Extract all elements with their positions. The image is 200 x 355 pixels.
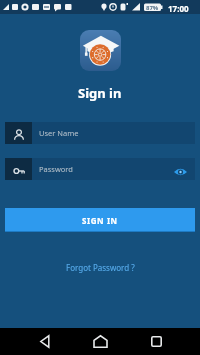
button[interactable] xyxy=(25,328,65,355)
staticText: User Name xyxy=(39,128,79,138)
button[interactable]: User Name xyxy=(5,122,195,144)
staticText: Sign in xyxy=(78,84,122,102)
staticText: 17:00 xyxy=(168,3,189,14)
button[interactable]: SIGN IN xyxy=(5,208,195,232)
staticText: Password xyxy=(39,164,73,174)
button[interactable] xyxy=(136,328,176,355)
button[interactable] xyxy=(80,328,120,355)
staticText: Forgot Password ? xyxy=(66,262,135,273)
button[interactable]: Password xyxy=(5,158,195,180)
button[interactable]: Forgot Password ? xyxy=(66,262,135,273)
staticText: SIGN IN xyxy=(82,215,118,226)
staticText: 87% xyxy=(146,4,159,12)
button[interactable] xyxy=(174,167,187,177)
